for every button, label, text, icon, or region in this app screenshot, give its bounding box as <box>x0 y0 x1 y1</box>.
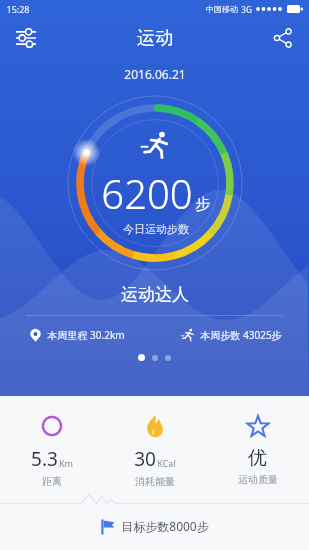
button[interactable]: 30 <box>103 414 206 488</box>
staticText: 6200 <box>101 166 193 220</box>
staticText: 15:28 <box>6 3 30 15</box>
button[interactable]: Share <box>265 20 301 56</box>
button[interactable] <box>165 355 171 361</box>
button[interactable]: 5.3 <box>0 414 103 488</box>
staticText: 步 <box>195 195 210 214</box>
staticText: 2016.06.21 <box>124 66 186 82</box>
staticText: 优 <box>248 446 267 470</box>
staticText: 本周里程 30.2km <box>47 328 125 342</box>
button[interactable]: 目标步数8000步 <box>0 508 309 544</box>
staticText: 距离 <box>42 475 62 488</box>
staticText: 5.3 <box>31 446 58 472</box>
staticText: Km <box>59 457 73 469</box>
button[interactable]: Settings <box>8 20 44 56</box>
button[interactable] <box>138 354 145 361</box>
staticText: 运动质量 <box>238 473 278 486</box>
staticText: 目标步数8000步 <box>121 518 209 534</box>
button[interactable] <box>152 355 158 361</box>
staticText: KCal <box>157 457 176 469</box>
button[interactable]: 优 <box>206 414 309 486</box>
staticText: 运动达人 <box>121 284 189 305</box>
staticText: 3G <box>241 4 252 15</box>
staticText: 运动 <box>137 27 173 50</box>
button[interactable]: 本周步数 43025步 <box>154 328 309 342</box>
staticText: 中国移动 <box>206 4 238 14</box>
staticText: 今日运动步数 <box>123 222 189 236</box>
staticText: 消耗能量 <box>135 475 175 488</box>
button[interactable]: 本周里程 30.2km <box>0 328 154 342</box>
staticText: 30 <box>134 446 156 472</box>
staticText: 本周步数 43025步 <box>200 328 282 342</box>
